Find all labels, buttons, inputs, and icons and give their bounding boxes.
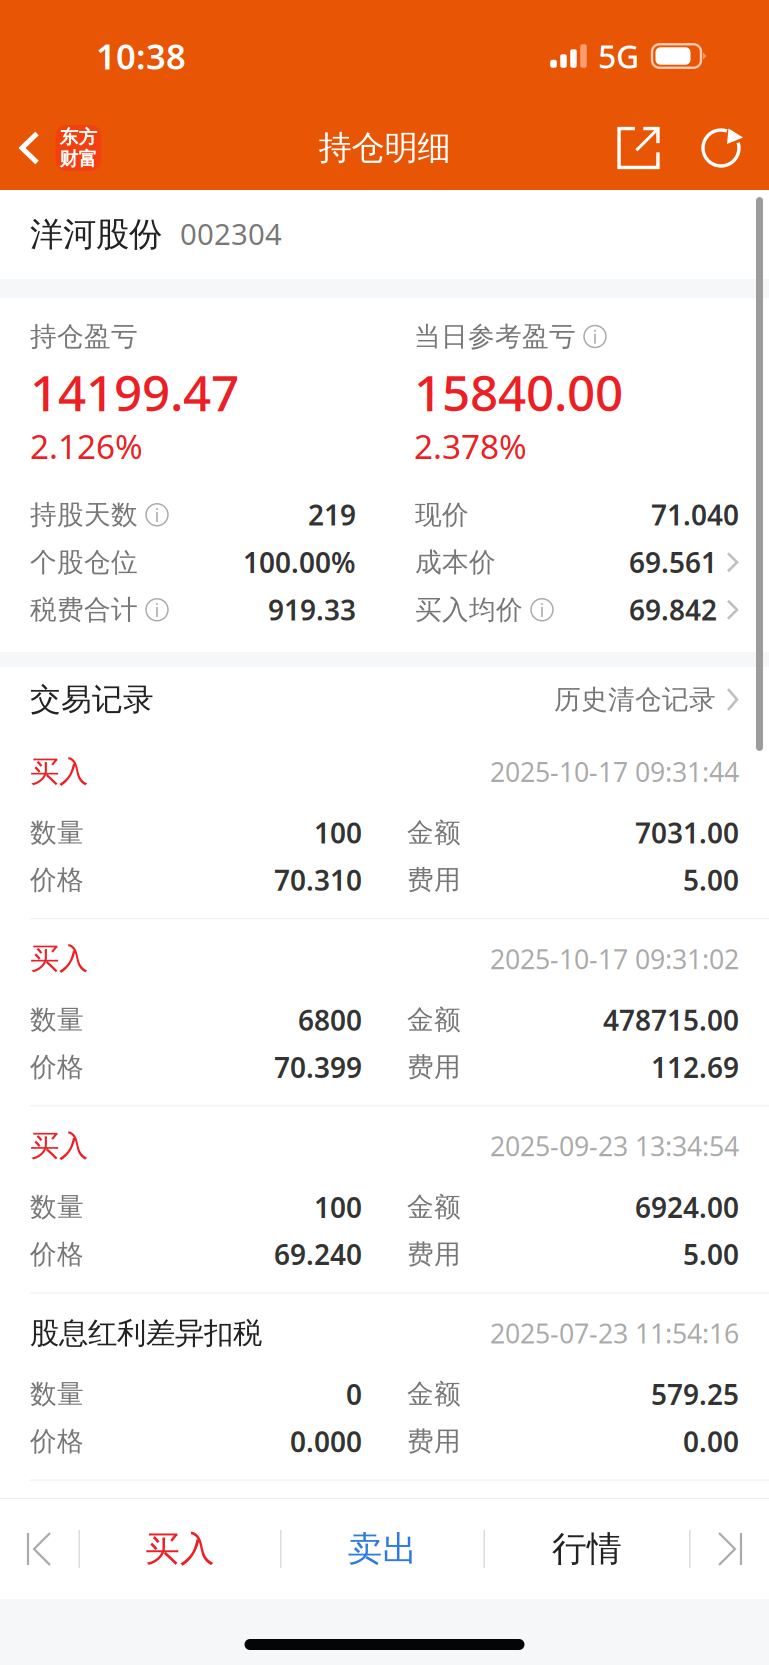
staticText: 成本价 [415,546,496,579]
staticText: 金额 [407,816,461,849]
staticText: 6800 [298,1001,362,1038]
staticText: 2.126% [30,424,143,468]
staticText: 6924.00 [635,1188,739,1226]
staticText: 14199.47 [30,359,239,425]
staticText: 价格 [30,1051,84,1083]
staticText: 100 [314,814,362,851]
staticText: 金额 [407,1191,461,1223]
staticText: 价格 [30,1238,84,1271]
button[interactable]: Refresh [689,106,756,190]
staticText: 69.842 [629,591,717,628]
staticText: 0.000 [290,1423,362,1460]
staticText: 个股仓位 [30,546,138,579]
staticText: 10:38 [96,33,186,79]
staticText: 金额 [407,1378,461,1411]
staticText: 5G [598,35,639,77]
staticText: 71.040 [651,496,739,533]
staticText: 费用 [407,1051,461,1083]
staticText: 持仓盈亏 [30,320,138,353]
staticText: 费用 [407,1238,461,1271]
staticText: 税费合计 [30,593,138,626]
staticText: 112.69 [651,1048,739,1086]
staticText: 费用 [407,1425,461,1458]
button[interactable]: Share [588,106,689,190]
staticText: 买入 [30,1128,88,1164]
staticText: 002304 [180,214,282,253]
staticText: 2.378% [414,424,527,468]
button[interactable]: 历史清仓记录 [554,683,739,716]
button[interactable]: Next [690,1499,768,1599]
staticText: 100.00% [243,544,356,581]
staticText: 价格 [30,1425,84,1458]
staticText: 数量 [30,1003,84,1036]
staticText: 919.33 [268,591,356,628]
staticText: 金额 [407,1003,461,1036]
staticText: 70.399 [274,1048,362,1086]
staticText: 财富 [59,147,97,170]
staticText: 70.310 [274,861,362,899]
staticText: 买入均价 [415,593,523,626]
button[interactable]: 行情 [485,1499,689,1599]
staticText: 当日参考盈亏 [414,320,576,353]
staticText: 洋河股份 [30,214,162,255]
staticText: 交易记录 [30,681,154,718]
staticText: 69.240 [274,1236,362,1273]
staticText: 买入 [30,941,88,977]
staticText: 数量 [30,1191,84,1223]
staticText: 2025-09-23 13:34:54 [490,1128,739,1164]
staticText: 买入 [30,754,88,790]
staticText: i [154,597,159,622]
staticText: 219 [308,496,356,533]
staticText: 5.00 [683,1236,739,1273]
staticText: 69.561 [629,544,717,581]
staticText: i [592,324,597,349]
staticText: 历史清仓记录 [554,683,716,716]
staticText: 费用 [407,864,461,896]
staticText: 现价 [415,498,469,531]
staticText: 数量 [30,816,84,849]
staticText: 行情 [552,1528,622,1570]
staticText: 持股天数 [30,498,138,531]
staticText: 579.25 [651,1376,739,1413]
button[interactable]: Back [0,106,111,190]
staticText: 5.00 [683,861,739,899]
staticText: 7031.00 [635,814,739,851]
staticText: 0.00 [683,1423,739,1460]
staticText: 卖出 [347,1528,417,1570]
button[interactable]: 买入 [80,1499,280,1599]
staticText: 持仓明细 [318,127,450,168]
staticText: i [154,502,159,527]
staticText: 15840.00 [414,359,623,425]
staticText: 2025-10-17 09:31:02 [490,941,739,976]
staticText: 股息红利差异扣税 [30,1315,262,1351]
staticText: 买入 [145,1528,215,1570]
button[interactable]: 卖出 [281,1499,483,1599]
staticText: i [539,597,544,622]
staticText: 数量 [30,1378,84,1411]
staticText: 478715.00 [603,1001,739,1038]
staticText: 100 [314,1188,362,1226]
staticText: 2025-07-23 11:54:16 [490,1315,739,1351]
staticText: 0 [346,1376,362,1413]
button[interactable]: Previous [0,1499,78,1599]
staticText: 2025-10-17 09:31:44 [490,754,739,789]
staticText: 东方 [59,126,97,148]
staticText: 价格 [30,864,84,896]
